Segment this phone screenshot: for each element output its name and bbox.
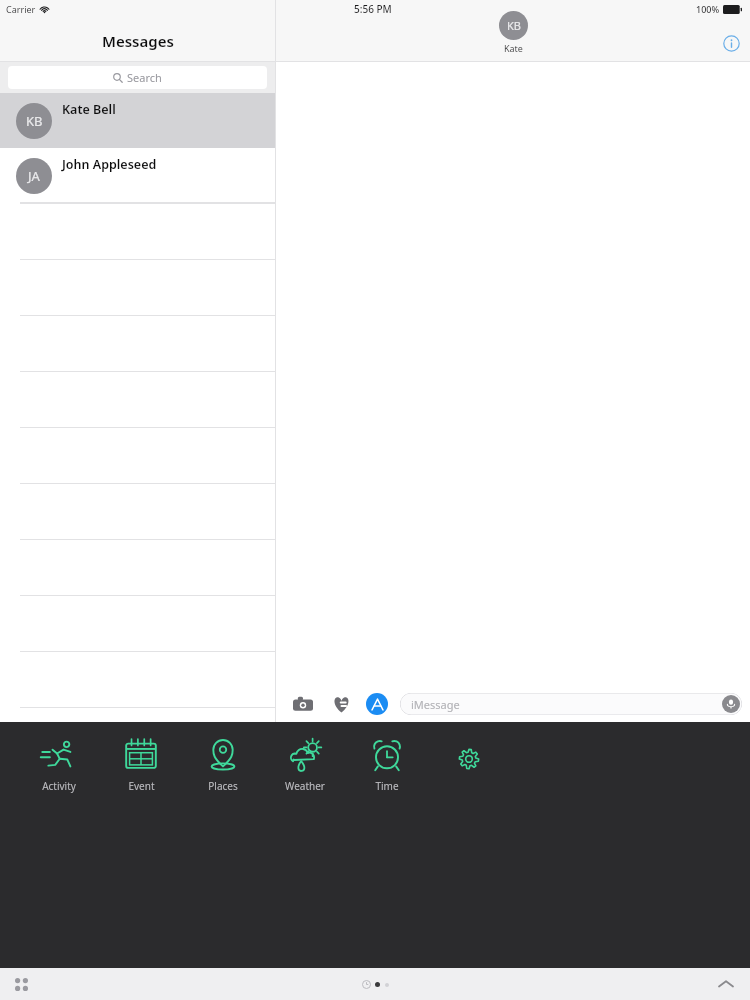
button[interactable]: iMessage [400,693,742,715]
button[interactable]: Event [100,736,182,793]
button[interactable] [0,315,275,371]
button[interactable]: Dictate [722,695,740,713]
button[interactable]: Search [8,66,267,89]
button[interactable]: Settings [428,736,510,798]
staticText: Event [128,779,155,793]
button[interactable] [0,651,275,707]
button[interactable]: Activity [18,736,100,793]
staticText: Activity [42,779,76,793]
button[interactable]: Time [346,736,428,793]
staticText: John Appleseed [62,156,157,173]
button[interactable]: App Store [366,693,388,715]
button[interactable]: Expand [715,973,737,995]
button[interactable]: Digital Touch [328,691,354,717]
staticText: Weather [285,779,325,793]
button[interactable] [0,203,275,259]
staticText: Messages [102,31,174,51]
staticText: Search [127,70,162,85]
button[interactable] [0,427,275,483]
button[interactable]: Apps [10,973,32,995]
button[interactable] [0,371,275,427]
staticText: 100% [696,3,720,15]
staticText: 5:56 PM [354,2,392,16]
button[interactable]: Details [721,33,741,53]
staticText: Kate [504,42,523,54]
button[interactable] [0,707,275,722]
button[interactable] [0,259,275,315]
staticText: Places [208,779,238,793]
button[interactable]: Places [182,736,264,793]
staticText: Time [375,779,399,793]
staticText: KB [507,18,521,33]
staticText: Kate Bell [62,101,116,118]
staticText: JA [28,167,40,185]
button[interactable] [0,483,275,539]
button[interactable] [0,595,275,651]
button[interactable]: KB [0,93,275,148]
button[interactable]: Weather [264,736,346,793]
button[interactable]: Camera [290,691,316,717]
staticText: KB [26,112,43,130]
button[interactable] [0,539,275,595]
button[interactable]: JA [0,148,275,203]
staticText: Carrier [6,3,36,15]
button[interactable]: KB [499,11,528,54]
staticText: iMessage [411,697,460,712]
